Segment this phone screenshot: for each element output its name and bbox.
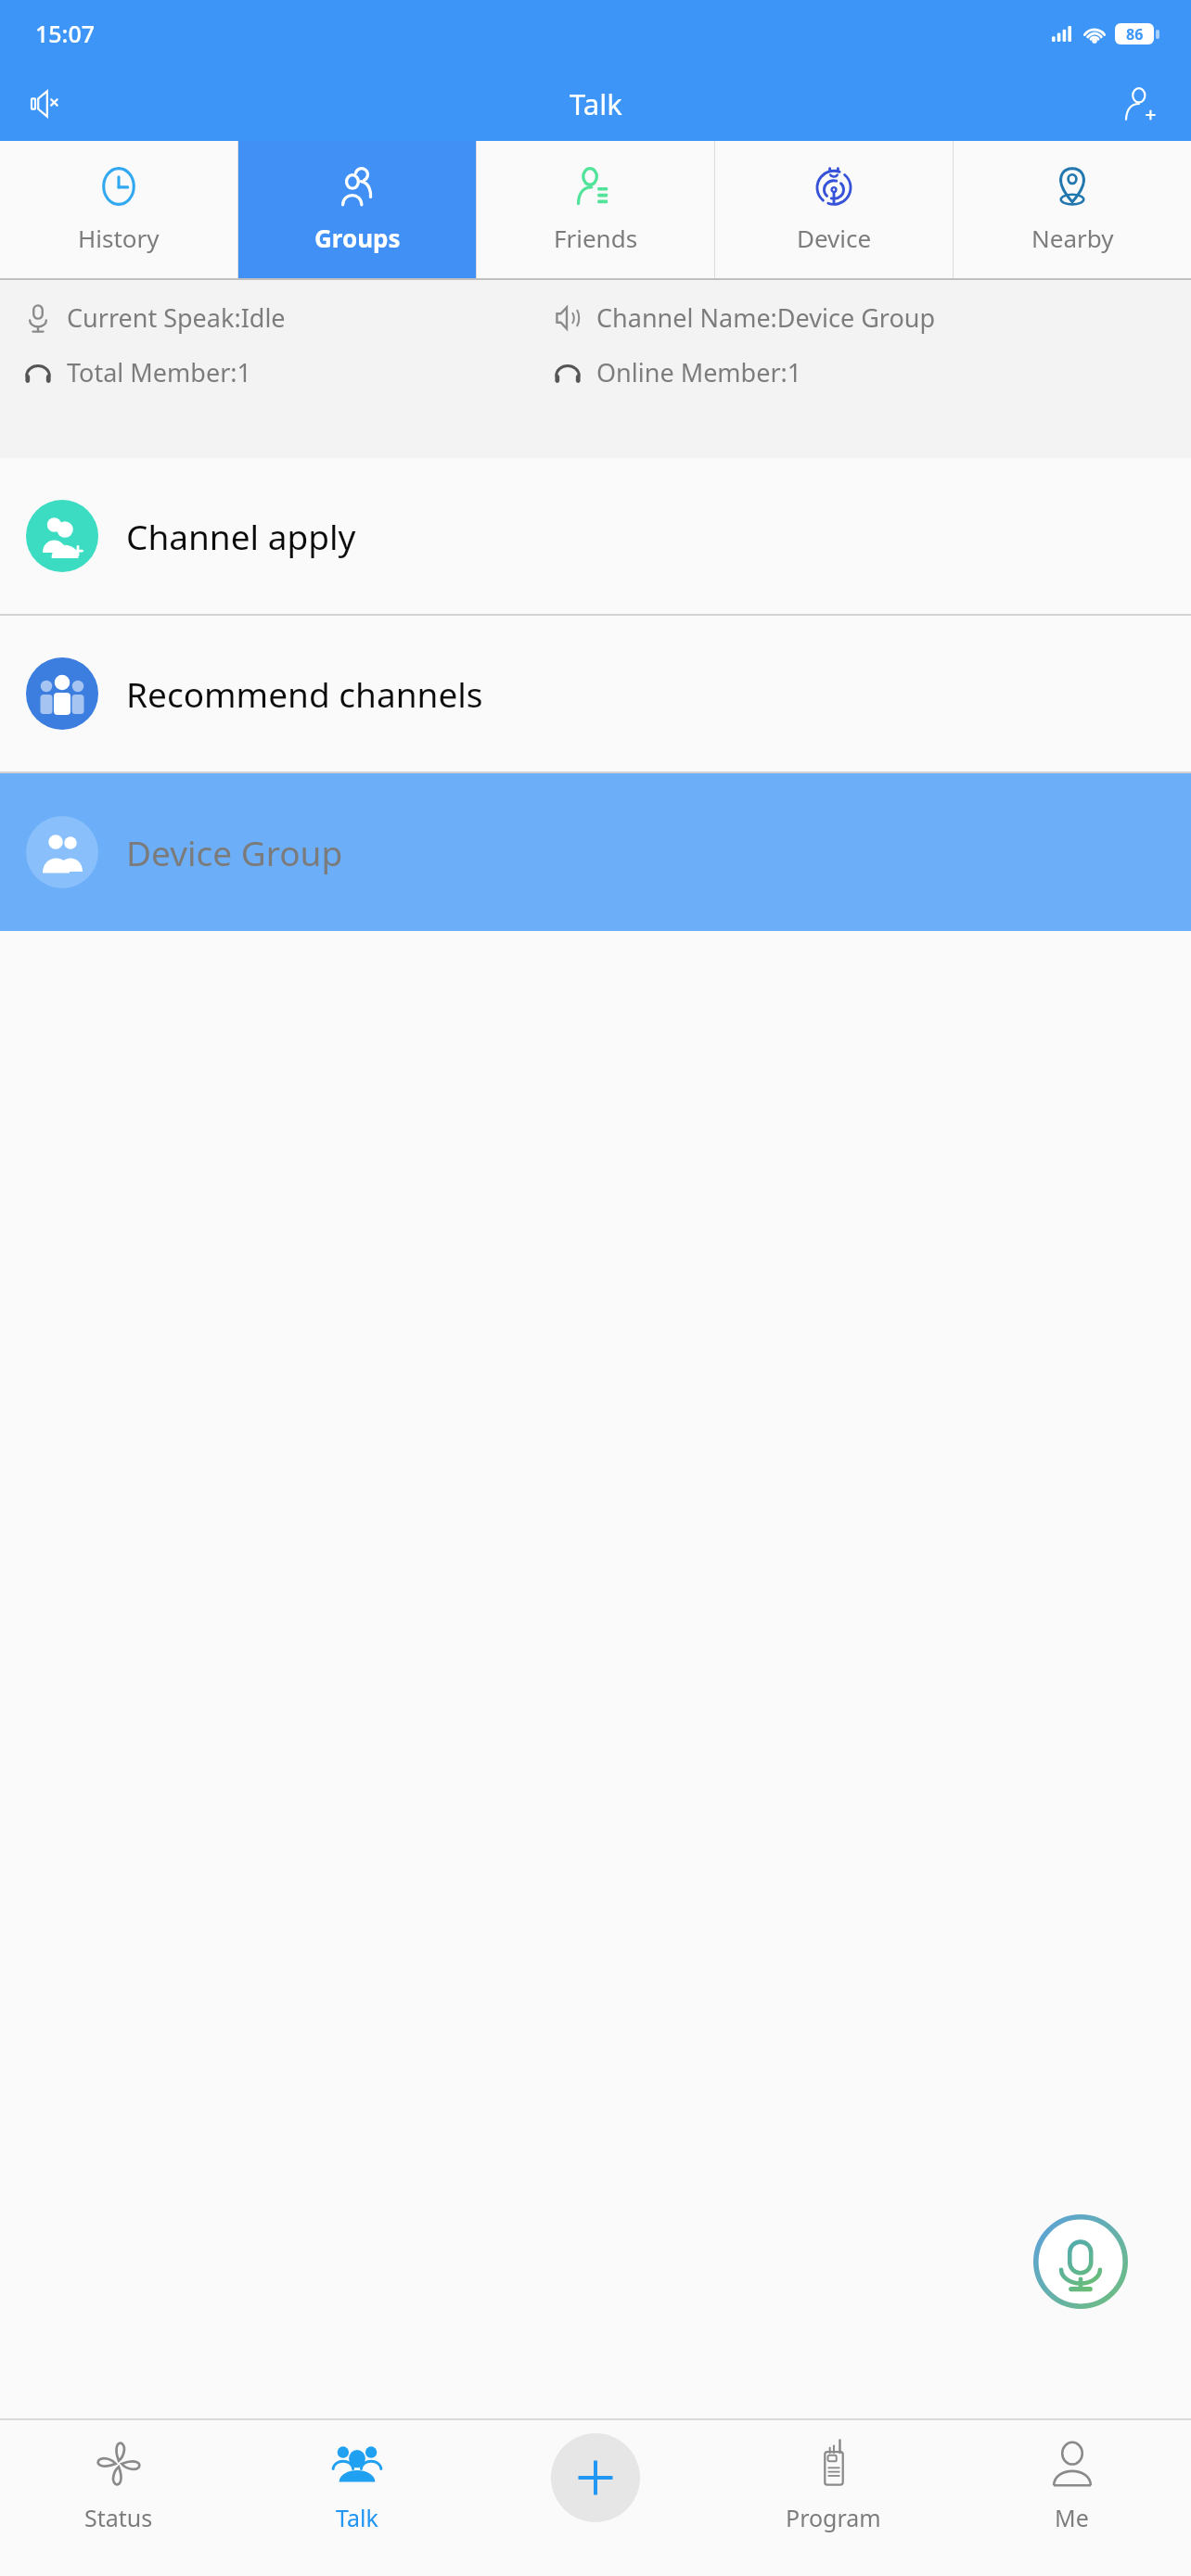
button[interactable]: Push to talk — [1033, 2214, 1128, 2309]
staticText: History — [78, 222, 160, 254]
staticText: Friends — [554, 222, 638, 254]
other: Add — [551, 2433, 640, 2522]
staticText: Groups — [314, 222, 401, 254]
staticText: Talk — [336, 2502, 378, 2533]
button[interactable]: Talk — [237, 2420, 476, 2576]
button[interactable]: Device Group — [0, 773, 1191, 931]
button[interactable]: Nearby — [954, 141, 1191, 278]
staticText: Nearby — [1031, 222, 1114, 254]
button[interactable]: History — [0, 141, 237, 278]
staticText: Talk — [570, 84, 622, 123]
staticText: Current Speak:Idle — [67, 300, 286, 335]
button[interactable]: Mute — [13, 70, 80, 137]
button[interactable]: Device — [715, 141, 953, 278]
staticText: Device Group — [126, 829, 343, 875]
staticText: Device — [797, 222, 872, 254]
button[interactable]: Recommend channels — [0, 616, 1191, 772]
button[interactable]: Channel apply — [0, 458, 1191, 614]
staticText: Online Member:1 — [596, 355, 802, 389]
staticText: Channel Name:Device Group — [596, 300, 936, 335]
staticText: Total Member:1 — [67, 355, 251, 389]
staticText: Recommend channels — [126, 670, 483, 717]
staticText: 86 — [1126, 24, 1144, 45]
button[interactable]: Add — [476, 2420, 714, 2576]
staticText: Program — [786, 2502, 881, 2533]
staticText: Me — [1055, 2502, 1089, 2533]
button[interactable]: Me — [953, 2420, 1191, 2576]
button[interactable]: Friends — [477, 141, 714, 278]
staticText: Status — [84, 2502, 153, 2533]
button[interactable]: Groups — [238, 141, 476, 278]
staticText: Channel apply — [126, 513, 356, 559]
staticText: 15:07 — [35, 18, 96, 49]
button[interactable]: Add contact — [1108, 70, 1174, 137]
button[interactable]: Program — [714, 2420, 953, 2576]
button[interactable]: Status — [0, 2420, 237, 2576]
